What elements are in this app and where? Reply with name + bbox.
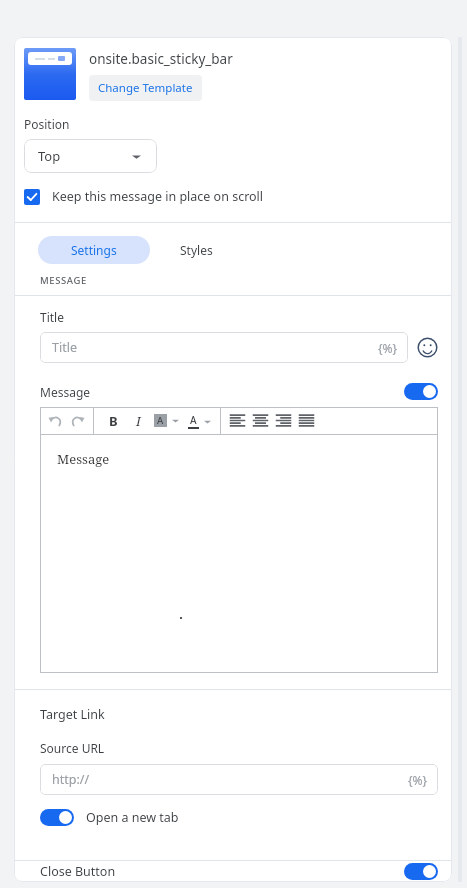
- button[interactable]: Change Template: [89, 75, 202, 101]
- staticText: Message: [57, 450, 110, 468]
- button[interactable]: Template preview: [24, 48, 76, 100]
- staticText: {%}: [408, 772, 428, 788]
- staticText: A: [157, 414, 164, 427]
- button[interactable]: Align center: [253, 413, 268, 428]
- button[interactable]: http://: [40, 764, 438, 795]
- staticText: http://: [52, 771, 90, 788]
- button[interactable]: Justify: [299, 413, 314, 428]
- staticText: Keep this message in place on scroll: [52, 188, 264, 205]
- button[interactable]: Toggle message: [404, 383, 438, 400]
- staticText: Open a new tab: [86, 809, 179, 826]
- button[interactable]: Toggle close button: [404, 863, 438, 880]
- button[interactable]: Open a new tab: [40, 809, 179, 826]
- staticText: MESSAGE: [40, 274, 87, 287]
- button[interactable]: Redo: [69, 412, 86, 429]
- staticText: Message: [40, 384, 91, 400]
- staticText: A: [190, 413, 197, 427]
- button[interactable]: Undo: [47, 412, 64, 429]
- button[interactable]: Keep this message in place on scroll: [24, 188, 264, 205]
- button[interactable]: Text color: [188, 413, 211, 429]
- button[interactable]: Settings: [38, 236, 150, 264]
- staticText: Target Link: [40, 706, 105, 723]
- button[interactable]: B: [104, 412, 122, 430]
- button[interactable]: Highlight color: [154, 414, 179, 427]
- staticText: onsite.basic_sticky_bar: [89, 50, 233, 68]
- staticText: Styles: [180, 242, 213, 258]
- staticText: Source URL: [40, 740, 105, 756]
- button[interactable]: Close Button: [14, 861, 452, 882]
- button[interactable]: Align left: [230, 413, 245, 428]
- button[interactable]: Open a new tab: [40, 809, 74, 826]
- staticText: B: [109, 412, 118, 430]
- button[interactable]: Title: [40, 332, 408, 363]
- staticText: {%}: [378, 340, 398, 356]
- staticText: Change Template: [98, 80, 193, 96]
- staticText: I: [136, 412, 141, 430]
- button[interactable]: I: [129, 412, 147, 430]
- staticText: Close Button: [40, 863, 116, 880]
- button[interactable]: Styles: [150, 236, 242, 264]
- staticText: Title: [52, 339, 77, 356]
- button[interactable]: Top: [24, 139, 157, 173]
- staticText: Settings: [71, 242, 117, 258]
- button[interactable]: Align right: [276, 413, 291, 428]
- staticText: Title: [40, 309, 64, 325]
- staticText: Position: [24, 116, 70, 132]
- button[interactable]: Insert emoji: [417, 337, 438, 358]
- staticText: Top: [38, 147, 61, 165]
